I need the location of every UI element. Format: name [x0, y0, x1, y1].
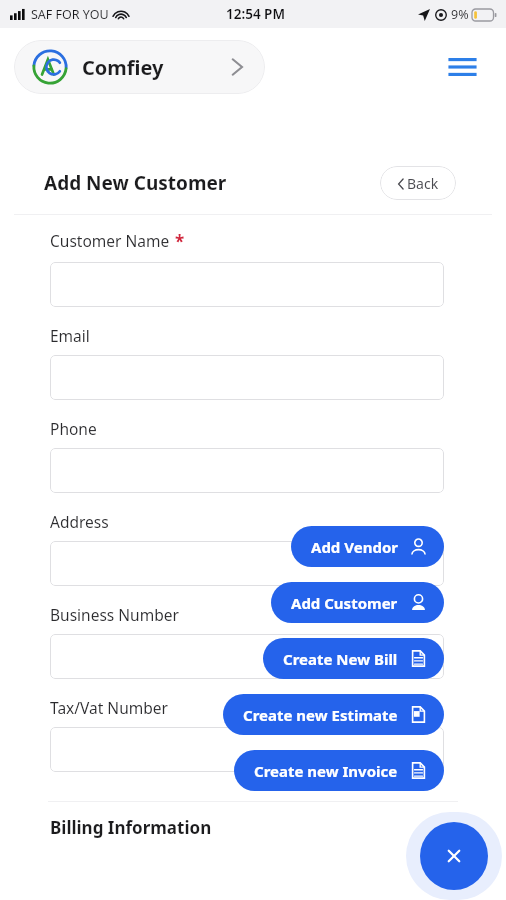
staticText: 12:54 PM: [226, 5, 285, 23]
button[interactable]: [50, 448, 444, 493]
button[interactable]: [50, 541, 444, 586]
button[interactable]: [50, 634, 444, 679]
staticText: Address: [50, 511, 109, 532]
staticText: Tax/Vat Number: [50, 697, 168, 718]
staticText: Business Number: [50, 604, 179, 625]
button[interactable]: Menu: [443, 48, 481, 86]
staticText: 9%: [451, 6, 469, 23]
button[interactable]: Comfiey: [14, 40, 265, 94]
staticText: Add New Customer: [44, 170, 227, 196]
button[interactable]: Back: [380, 166, 456, 200]
staticText: Phone: [50, 418, 97, 439]
button[interactable]: Add Vendor: [291, 526, 444, 567]
staticText: Customer Name: [50, 230, 170, 251]
button[interactable]: Create New Bill: [263, 638, 444, 679]
staticText: Create New Bill: [283, 649, 398, 669]
button[interactable]: Create new Estimate: [223, 694, 444, 735]
button[interactable]: [50, 355, 444, 400]
staticText: Create new Invoice: [254, 761, 398, 781]
button[interactable]: Create new Invoice: [234, 750, 444, 791]
staticText: Create new Estimate: [243, 705, 398, 725]
staticText: Back: [407, 174, 439, 193]
staticText: *: [175, 230, 185, 253]
button[interactable]: Close menu: [420, 822, 488, 890]
staticText: SAF FOR YOU: [31, 6, 109, 23]
button[interactable]: Add Customer: [271, 582, 444, 623]
staticText: Add Vendor: [311, 537, 398, 557]
staticText: Email: [50, 325, 90, 346]
staticText: Comfiey: [82, 54, 164, 81]
button[interactable]: [50, 262, 444, 307]
staticText: Billing Information: [50, 816, 212, 839]
button[interactable]: [50, 727, 444, 772]
staticText: Add Customer: [291, 593, 398, 613]
